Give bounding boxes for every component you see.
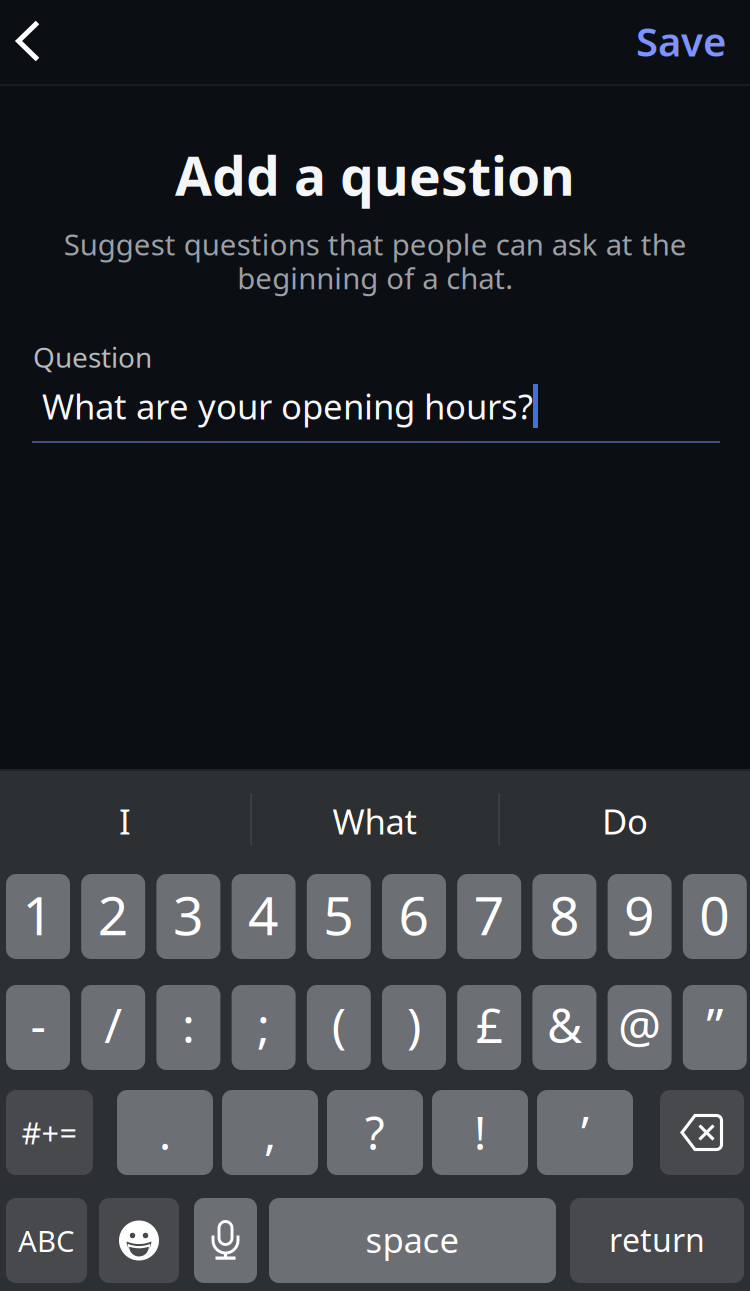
button[interactable]: ( xyxy=(307,985,371,1070)
button[interactable]: . xyxy=(117,1090,213,1175)
staticText: ! xyxy=(474,1102,486,1163)
staticText: ) xyxy=(407,993,421,1056)
staticText: 1 xyxy=(22,879,53,950)
staticText: Do xyxy=(602,798,648,844)
staticText: 3 xyxy=(173,879,204,950)
button[interactable]: return xyxy=(570,1198,744,1283)
staticText: Save xyxy=(636,14,726,67)
button[interactable]: , xyxy=(222,1090,318,1175)
staticText: ; xyxy=(257,993,270,1056)
staticText: Question xyxy=(33,338,152,376)
staticText: 9 xyxy=(624,879,655,950)
button[interactable]: @ xyxy=(608,985,672,1070)
button[interactable]: & xyxy=(532,985,596,1070)
button[interactable]: ’ xyxy=(537,1090,633,1175)
staticText: . xyxy=(159,1102,171,1163)
staticText: ” xyxy=(706,993,723,1056)
staticText: #+= xyxy=(21,1112,77,1153)
button[interactable]: 6 xyxy=(382,874,446,959)
button[interactable]: 2 xyxy=(81,874,145,959)
staticText: & xyxy=(547,993,582,1056)
staticText: 8 xyxy=(549,879,580,950)
button[interactable]: ; xyxy=(232,985,296,1070)
staticText: 0 xyxy=(699,879,730,950)
staticText: : xyxy=(182,993,195,1056)
button[interactable]: ) xyxy=(382,985,446,1070)
staticText: What are your opening hours? xyxy=(42,383,533,429)
button[interactable]: #+= xyxy=(6,1090,93,1175)
button[interactable]: : xyxy=(156,985,220,1070)
button[interactable]: Save xyxy=(606,4,726,78)
button[interactable]: / xyxy=(81,985,145,1070)
staticText: @ xyxy=(618,993,661,1056)
button[interactable]: ABC xyxy=(6,1198,87,1283)
staticText: £ xyxy=(476,993,503,1056)
staticText: I xyxy=(119,798,131,844)
staticText: 6 xyxy=(398,879,429,950)
staticText: 7 xyxy=(474,879,505,950)
button[interactable]: Emoji xyxy=(99,1198,179,1283)
staticText: ( xyxy=(332,993,346,1056)
staticText: What xyxy=(332,798,417,844)
button[interactable]: ” xyxy=(683,985,747,1070)
button[interactable]: 1 xyxy=(6,874,70,959)
staticText: ’ xyxy=(581,1102,589,1163)
staticText: , xyxy=(264,1102,276,1163)
staticText: / xyxy=(104,993,122,1056)
button[interactable]: - xyxy=(6,985,70,1070)
button[interactable]: ! xyxy=(432,1090,528,1175)
staticText: return xyxy=(609,1218,705,1261)
button[interactable]: Back xyxy=(0,4,61,78)
button[interactable]: What xyxy=(251,768,499,873)
button[interactable]: Delete xyxy=(660,1090,744,1175)
button[interactable]: ? xyxy=(327,1090,423,1175)
staticText: Add a question xyxy=(175,140,575,210)
button[interactable]: space xyxy=(269,1198,556,1283)
button[interactable]: 8 xyxy=(532,874,596,959)
button[interactable]: 9 xyxy=(608,874,672,959)
staticText: - xyxy=(30,993,45,1056)
staticText: Suggest questions that people can ask at… xyxy=(63,224,686,297)
button[interactable]: 3 xyxy=(156,874,220,959)
button[interactable]: 4 xyxy=(232,874,296,959)
staticText: ? xyxy=(365,1102,385,1163)
staticText: 5 xyxy=(323,879,354,950)
button[interactable]: Dictate xyxy=(194,1198,257,1283)
button[interactable]: I xyxy=(1,768,249,873)
staticText: space xyxy=(365,1216,459,1262)
staticText: ABC xyxy=(18,1221,75,1260)
staticText: 2 xyxy=(98,879,129,950)
button[interactable]: Do xyxy=(501,768,749,873)
button[interactable]: £ xyxy=(457,985,521,1070)
button[interactable]: 7 xyxy=(457,874,521,959)
button[interactable]: 5 xyxy=(307,874,371,959)
button[interactable]: 0 xyxy=(683,874,747,959)
staticText: 4 xyxy=(248,879,279,950)
